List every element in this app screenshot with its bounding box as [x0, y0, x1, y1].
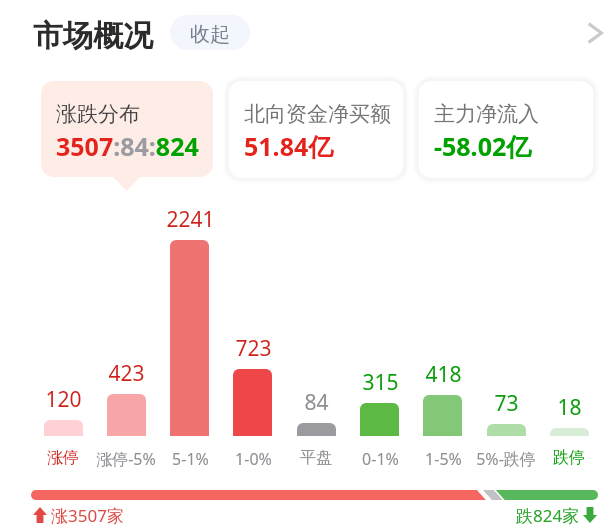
staticText: 跌停: [553, 448, 585, 468]
staticText: -58.02亿: [434, 129, 532, 163]
staticText: 2241: [166, 205, 215, 234]
button[interactable]: [348, 200, 411, 468]
other: 涨跌比例条: [31, 490, 598, 500]
staticText: 1-5%: [425, 448, 462, 470]
staticText: 涨3507家: [51, 504, 124, 527]
staticText: 市场概况: [33, 17, 153, 55]
staticText: 跌824家: [516, 504, 580, 527]
staticText: 120: [45, 385, 82, 414]
staticText: 北向资金净买额: [244, 101, 391, 127]
staticText: 主力净流入: [434, 101, 539, 127]
staticText: 5-1%: [172, 448, 209, 470]
staticText: 51.84亿: [244, 129, 334, 163]
staticText: 84: [304, 388, 329, 417]
staticText: 3507:84:824: [56, 129, 199, 163]
button[interactable]: [538, 200, 601, 468]
button[interactable]: 跌824家: [512, 503, 601, 527]
staticText: 418: [425, 360, 462, 389]
button[interactable]: [221, 200, 284, 468]
staticText: 5%-跌停: [476, 448, 536, 470]
button[interactable]: 市场概况: [27, 13, 147, 59]
staticText: 涨停: [47, 448, 79, 468]
button[interactable]: 北向资金净买额: [229, 81, 403, 177]
button[interactable]: [474, 200, 537, 468]
staticText: 收起: [190, 22, 230, 47]
button[interactable]: [285, 200, 348, 468]
button[interactable]: 主力净流入: [419, 81, 593, 177]
staticText: 0-1%: [362, 448, 399, 470]
button[interactable]: [31, 200, 94, 468]
button[interactable]: 收起: [170, 15, 250, 50]
staticText: 73: [494, 389, 519, 418]
staticText: 18: [557, 393, 582, 422]
staticText: 涨停-5%: [96, 448, 156, 470]
button[interactable]: 涨3507家: [29, 503, 131, 527]
staticText: 423: [108, 359, 145, 388]
staticText: 315: [362, 368, 399, 397]
staticText: 1-0%: [235, 448, 272, 470]
button[interactable]: [158, 200, 221, 468]
staticText: 平盘: [300, 448, 332, 468]
staticText: 涨跌分布: [56, 101, 140, 127]
button[interactable]: [95, 200, 158, 468]
staticText: 723: [235, 334, 272, 363]
button[interactable]: 涨跌分布: [41, 81, 213, 177]
button[interactable]: [411, 200, 474, 468]
button[interactable]: 查看更多 / See more: [577, 13, 613, 53]
